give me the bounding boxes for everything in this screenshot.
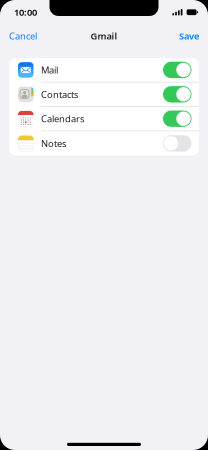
staticText: Notes bbox=[41, 137, 66, 150]
button[interactable]: Contacts bbox=[9, 82, 199, 107]
button[interactable]: Mail bbox=[9, 58, 199, 82]
staticText: Gmail bbox=[90, 30, 117, 42]
staticText: Save bbox=[179, 30, 199, 42]
staticText: Contacts bbox=[41, 88, 78, 100]
button[interactable]: Cancel bbox=[0, 25, 46, 47]
staticText: 10:00 bbox=[14, 6, 37, 18]
staticText: Cancel bbox=[9, 30, 37, 42]
button[interactable]: Save bbox=[170, 25, 208, 47]
staticText: Calendars bbox=[41, 112, 84, 125]
button[interactable]: Notes bbox=[9, 131, 199, 156]
staticText: Mail bbox=[41, 64, 58, 76]
button[interactable]: Calendars bbox=[9, 107, 199, 131]
